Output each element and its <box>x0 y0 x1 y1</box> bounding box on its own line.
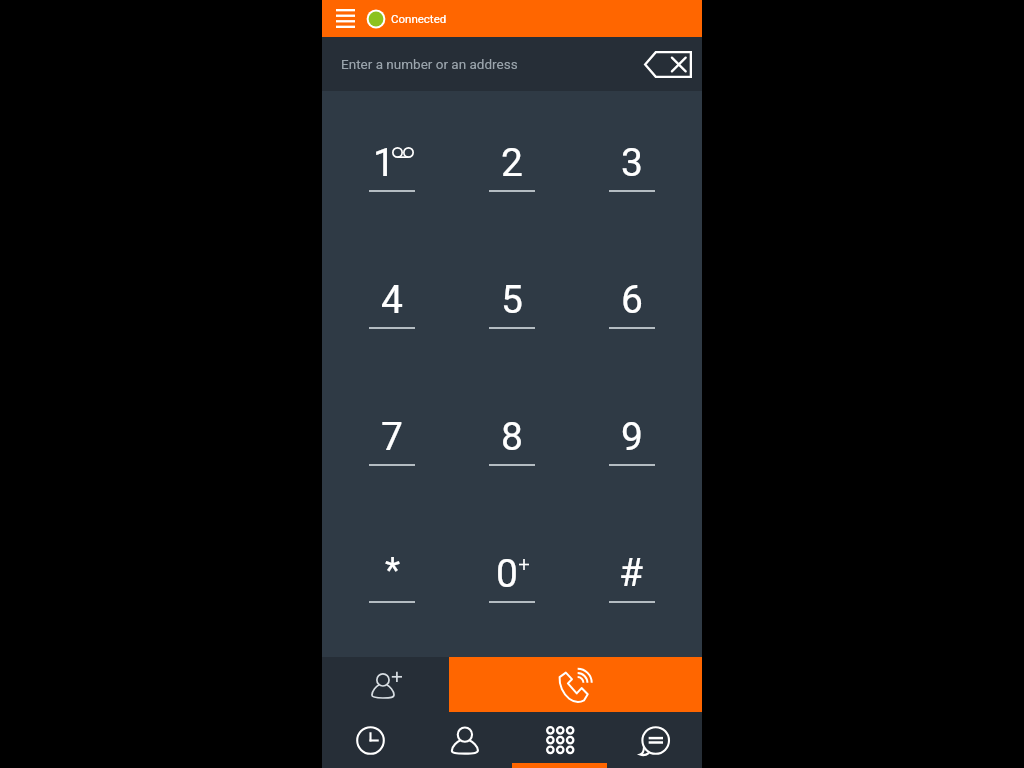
staticText: 8 <box>501 414 523 460</box>
staticText: 3 <box>621 140 643 186</box>
staticText: 1 <box>373 140 395 186</box>
button[interactable]: 5 <box>452 228 572 365</box>
button[interactable]: 2 <box>452 91 572 228</box>
button[interactable]: Messages <box>607 712 702 768</box>
button[interactable]: Dialpad <box>512 712 607 768</box>
button[interactable]: 6 <box>572 228 692 365</box>
staticText: 7 <box>381 414 403 460</box>
button[interactable]: Call <box>449 657 702 712</box>
button[interactable]: Recents <box>322 712 417 768</box>
staticText: * <box>385 550 401 591</box>
staticText: 2 <box>501 140 523 186</box>
staticText: 0 <box>496 551 518 597</box>
staticText: Connected <box>391 12 447 25</box>
button[interactable]: # <box>572 502 692 639</box>
button[interactable]: Contacts <box>417 712 512 768</box>
staticText: Enter a number or an address <box>341 56 518 72</box>
staticText: 4 <box>381 277 403 323</box>
button[interactable]: 7 <box>332 365 452 502</box>
button[interactable]: 4 <box>332 228 452 365</box>
button[interactable]: Menu <box>322 0 369 37</box>
staticText: # <box>619 550 644 596</box>
staticText: 5 <box>501 277 523 323</box>
staticText: 9 <box>621 414 643 460</box>
staticText: 6 <box>621 277 643 323</box>
button[interactable]: 8 <box>452 365 572 502</box>
button[interactable]: Backspace <box>634 37 702 91</box>
button[interactable]: 3 <box>572 91 692 228</box>
button[interactable]: 9 <box>572 365 692 502</box>
button[interactable]: * <box>332 502 452 639</box>
button[interactable]: Add contact <box>322 657 449 712</box>
button[interactable]: 0 <box>452 502 572 639</box>
button[interactable]: 1 <box>332 91 452 228</box>
